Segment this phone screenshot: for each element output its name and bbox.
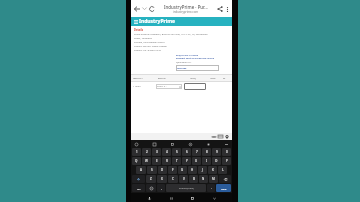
button[interactable]: ,: [157, 184, 165, 192]
button[interactable]: T: [172, 157, 181, 165]
button[interactable]: 5: [172, 148, 181, 156]
staticText: 7: [196, 150, 198, 154]
staticText: Y: [186, 159, 188, 163]
staticText: Select a ...: [157, 85, 179, 88]
button[interactable]: Settings: [188, 142, 193, 147]
button[interactable]: More options: [224, 6, 230, 12]
button[interactable]: Back: [133, 5, 141, 13]
button[interactable]: P: [222, 157, 231, 165]
staticText: D: [161, 168, 164, 172]
button[interactable]: X: [157, 175, 167, 183]
staticText: Q: [135, 159, 138, 163]
button[interactable]: A: [136, 166, 146, 174]
button[interactable]: Y: [182, 157, 191, 165]
staticText: 2: [146, 150, 148, 154]
button[interactable]: Collapse: [224, 142, 229, 147]
staticText: L: [222, 168, 224, 172]
staticText: O: [215, 159, 218, 163]
button[interactable]: 1: [132, 148, 141, 156]
button[interactable]: 0: [222, 148, 231, 156]
button[interactable]: Recents: [168, 195, 174, 201]
button[interactable]: 8: [202, 148, 211, 156]
staticText: Contact Person: Shilpa Adwani: [134, 45, 167, 48]
button[interactable]: 6: [182, 148, 191, 156]
button[interactable]: IDX4099: [176, 65, 219, 71]
button[interactable]: Link: [211, 134, 217, 140]
staticText: N: [202, 177, 205, 181]
button[interactable]: [184, 83, 206, 90]
staticText: .: [211, 186, 212, 190]
staticText: !#1: [137, 187, 141, 190]
staticText: X: [161, 177, 163, 181]
button[interactable]: G: [178, 166, 187, 174]
staticText: RATE: [203, 77, 223, 80]
button[interactable]: U: [192, 157, 201, 165]
button[interactable]: Emoji: [146, 184, 156, 192]
button[interactable]: Reload: [148, 5, 155, 12]
staticText: A: [140, 168, 142, 172]
button[interactable]: 9: [212, 148, 221, 156]
button[interactable]: Select a ...: [156, 84, 182, 89]
button[interactable]: L: [218, 166, 227, 174]
button[interactable]: Q: [132, 157, 141, 165]
button[interactable]: Z: [146, 175, 156, 183]
button[interactable]: Emoji: [134, 142, 139, 147]
staticText: G: [181, 168, 184, 172]
button[interactable]: Location: [224, 134, 230, 140]
staticText: RFQ/IP/CN-17/9TH3: [176, 54, 199, 57]
button[interactable]: 4: [162, 148, 171, 156]
button[interactable]: E: [152, 157, 161, 165]
button[interactable]: V: [179, 175, 188, 183]
button[interactable]: F: [168, 166, 177, 174]
button[interactable]: K: [208, 166, 217, 174]
button[interactable]: Shift: [132, 175, 145, 183]
button[interactable]: .: [207, 184, 215, 192]
staticText: 1 Units: [133, 85, 156, 88]
button[interactable]: B: [189, 175, 198, 183]
staticText: W: [145, 159, 148, 163]
button[interactable]: I: [202, 157, 211, 165]
staticText: Kolkata, West Bengal 700071: [134, 41, 166, 44]
button[interactable]: 3: [152, 148, 161, 156]
button[interactable]: J: [198, 166, 207, 174]
staticText: I: [206, 159, 208, 163]
button[interactable]: Back: [211, 195, 217, 201]
button[interactable]: M: [209, 175, 218, 183]
staticText: Shree Krishna Chambers, Block B 4th Floo…: [134, 33, 208, 36]
button[interactable]: 2: [142, 148, 151, 156]
button[interactable]: H: [188, 166, 197, 174]
staticText: R: [166, 159, 168, 163]
button[interactable]: R: [162, 157, 171, 165]
button[interactable]: Translate: [206, 142, 211, 147]
button[interactable]: Voice input: [146, 195, 152, 201]
button[interactable]: Home: [189, 195, 195, 201]
button[interactable]: S: [147, 166, 157, 174]
staticText: Quotation No.: [176, 61, 192, 64]
button[interactable]: O: [212, 157, 221, 165]
button[interactable]: English(India): [166, 184, 206, 192]
button[interactable]: Clipboard: [170, 142, 175, 147]
button[interactable]: D: [158, 166, 167, 174]
button[interactable]: !#1: [132, 184, 145, 192]
button[interactable]: Share: [216, 5, 224, 13]
staticText: English(India): [179, 187, 194, 190]
staticText: T: [176, 159, 178, 163]
button[interactable]: Menu: [133, 19, 138, 24]
staticText: Street, Ludhiana: [134, 37, 152, 40]
staticText: 6: [186, 150, 188, 154]
button[interactable]: Next: [216, 184, 231, 192]
button[interactable]: Backspace: [219, 175, 231, 183]
button[interactable]: GIF: [152, 142, 157, 147]
staticText: P: [226, 159, 228, 163]
button[interactable]: 7: [192, 148, 201, 156]
staticText: 5: [176, 150, 178, 154]
staticText: 9: [216, 150, 218, 154]
button[interactable]: N: [199, 175, 208, 183]
button[interactable]: IndustryPrime · Pur...: [155, 4, 216, 14]
staticText: C: [172, 177, 174, 181]
button[interactable]: Forward: [141, 5, 148, 12]
button[interactable]: Card: [217, 133, 224, 140]
staticText: J: [202, 168, 203, 172]
button[interactable]: W: [142, 157, 151, 165]
button[interactable]: C: [168, 175, 178, 183]
